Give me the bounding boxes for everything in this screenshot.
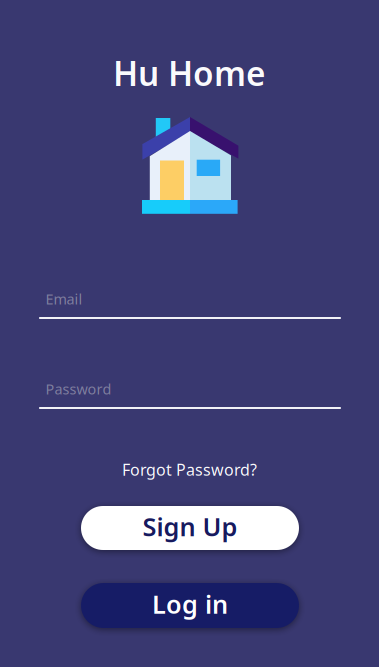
button[interactable]: Sign Up bbox=[81, 506, 299, 550]
staticText: Sign Up bbox=[142, 510, 237, 543]
staticText: Forgot Password? bbox=[122, 459, 257, 480]
button[interactable]: Log in bbox=[81, 583, 299, 628]
button[interactable]: Forgot Password? bbox=[89, 459, 289, 479]
staticText: Email bbox=[45, 289, 82, 309]
staticText: Log in bbox=[152, 587, 228, 621]
staticText: Password bbox=[45, 379, 111, 399]
staticText: Hu Home bbox=[113, 51, 266, 95]
